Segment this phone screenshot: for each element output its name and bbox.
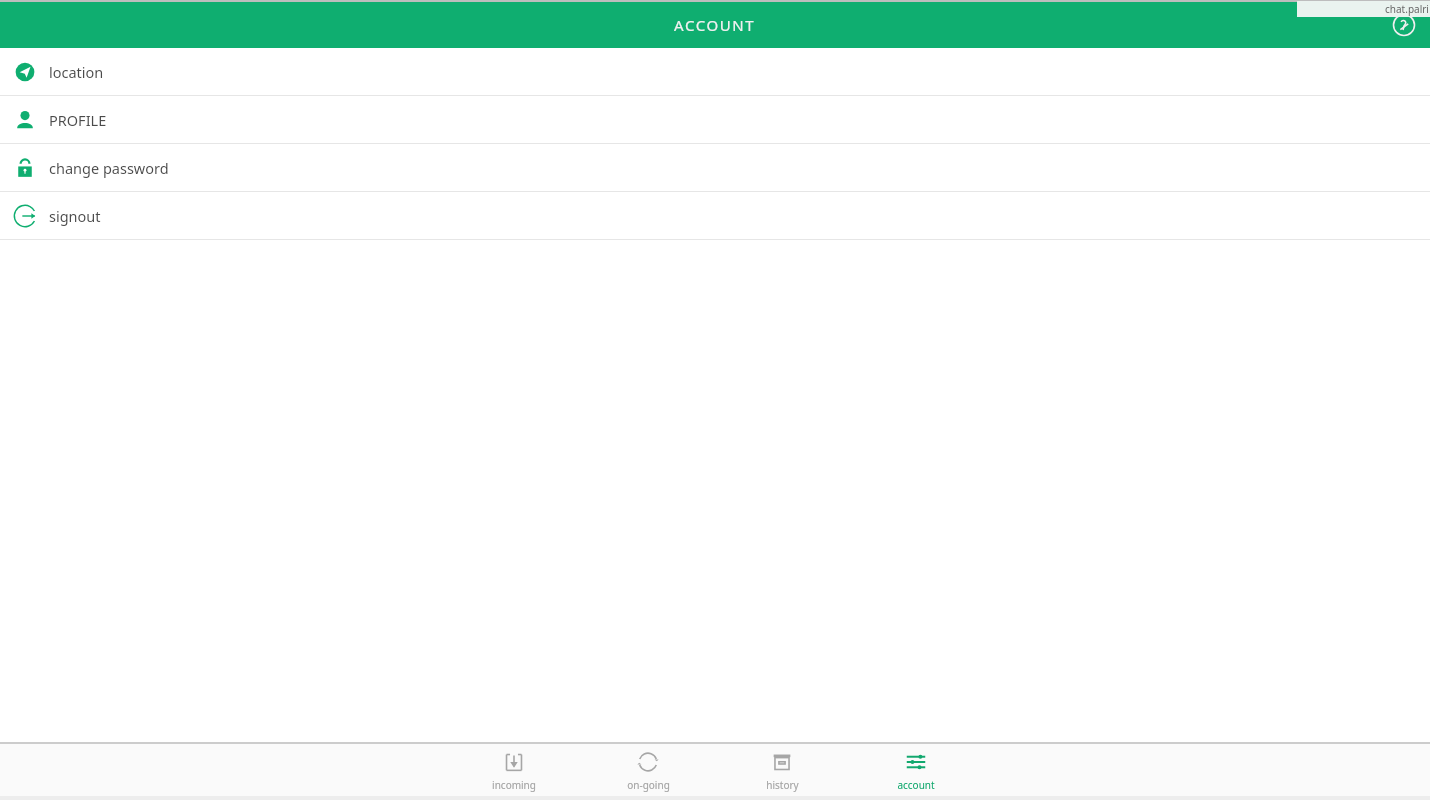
button[interactable]: PROFILE — [0, 96, 1430, 143]
button[interactable]: incoming — [447, 744, 581, 796]
button[interactable]: change password — [0, 144, 1430, 191]
button[interactable]: signout — [0, 192, 1430, 239]
staticText: chat.palri — [1385, 2, 1429, 16]
button[interactable]: history — [715, 744, 849, 796]
staticText: location — [49, 62, 104, 82]
staticText: signout — [49, 206, 101, 226]
staticText: change password — [49, 158, 169, 178]
button[interactable]: location — [0, 48, 1430, 95]
button[interactable]: on-going — [581, 744, 715, 796]
button[interactable]: account — [849, 744, 983, 796]
staticText: incoming — [492, 778, 536, 792]
staticText: history — [766, 778, 799, 792]
staticText: ACCOUNT — [674, 15, 756, 35]
staticText: PROFILE — [49, 110, 107, 130]
button[interactable]: Help — [1388, 9, 1420, 41]
staticText: on-going — [627, 778, 670, 792]
staticText: account — [897, 778, 935, 792]
